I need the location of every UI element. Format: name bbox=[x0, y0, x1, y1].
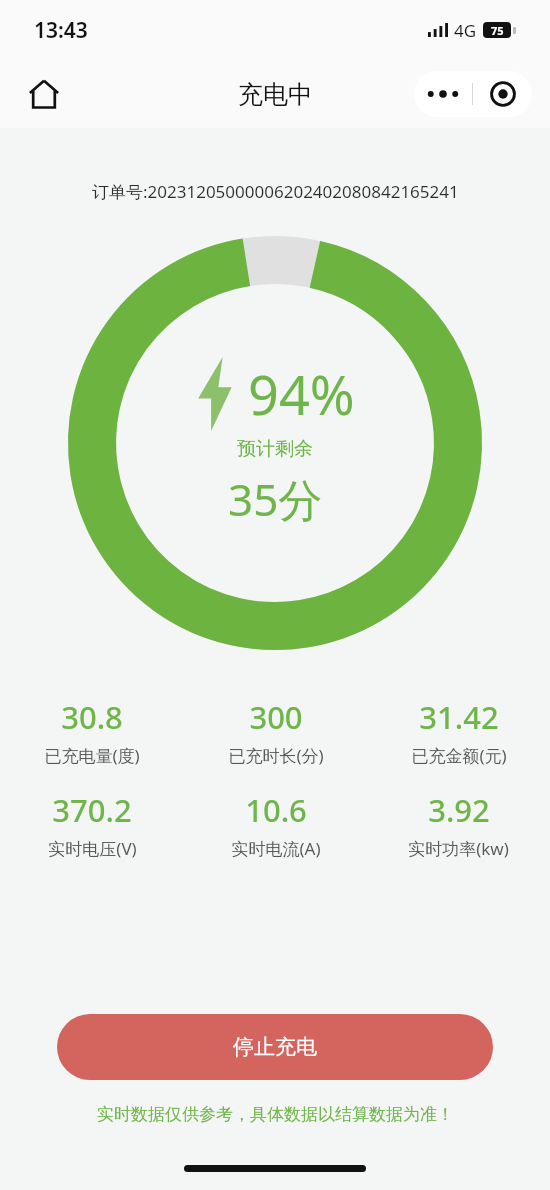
staticText: 充电中 bbox=[238, 79, 313, 110]
staticText: 31.42 bbox=[419, 696, 499, 738]
staticText: 已充金额(元) bbox=[411, 744, 507, 767]
staticText: 停止充电 bbox=[233, 1034, 317, 1060]
staticText: 已充电量(度) bbox=[44, 744, 140, 767]
staticText: 3.92 bbox=[428, 789, 490, 831]
staticText: 实时数据仅供参考，具体数据以结算数据为准！ bbox=[97, 1104, 454, 1125]
staticText: 300 bbox=[249, 696, 303, 738]
staticText: 订单号:20231205000006202402080842165241 bbox=[92, 180, 459, 203]
staticText: 实时电流(A) bbox=[231, 837, 321, 860]
staticText: 4G bbox=[454, 19, 477, 42]
staticText: 13:43 bbox=[34, 16, 88, 45]
staticText: 370.2 bbox=[52, 789, 132, 831]
staticText: 预计剩余 bbox=[237, 437, 313, 461]
button[interactable]: Close bbox=[473, 71, 532, 117]
staticText: 10.6 bbox=[245, 789, 307, 831]
staticText: 实时功率(kw) bbox=[408, 837, 509, 860]
staticText: 30.8 bbox=[61, 696, 123, 738]
staticText: 94% bbox=[248, 357, 355, 431]
staticText: 75 bbox=[491, 23, 504, 38]
staticText: 实时电压(V) bbox=[48, 837, 137, 860]
staticText: 已充时长(分) bbox=[228, 744, 324, 767]
button[interactable]: More bbox=[414, 71, 472, 117]
button[interactable]: Home bbox=[22, 72, 66, 116]
staticText: 35分 bbox=[228, 469, 323, 529]
button[interactable]: 停止充电 bbox=[57, 1014, 493, 1080]
